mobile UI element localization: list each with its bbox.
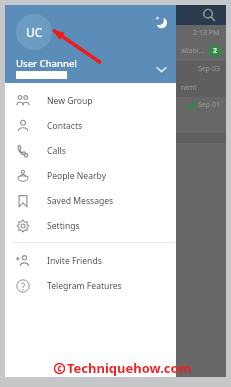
staticText: Telegram Features — [47, 280, 122, 292]
button[interactable]: New Group — [5, 88, 176, 113]
staticText: Invite Friends — [47, 255, 102, 267]
button[interactable]: Sep 01 — [5, 97, 226, 133]
button[interactable]: Telegram Features — [5, 273, 176, 298]
button[interactable]: 2:13 PM — [5, 25, 226, 61]
button[interactable]: People Nearby — [5, 163, 176, 188]
button[interactable]: Invite Friends — [5, 248, 176, 273]
staticText: ailabl... — [181, 46, 205, 56]
button[interactable]: Toggle night mode — [153, 14, 170, 31]
staticText: User Channel — [16, 57, 77, 70]
button[interactable]: Calls — [5, 138, 176, 163]
staticText: Sep 01 — [198, 100, 220, 110]
staticText: 2 — [213, 46, 218, 56]
button[interactable]: Settings — [5, 213, 176, 238]
staticText: Sep 03 — [198, 64, 220, 74]
staticText: UC — [26, 24, 43, 40]
button[interactable]: Profile photo — [16, 14, 52, 50]
staticText: People Nearby — [47, 170, 107, 182]
staticText: Saved Messages — [47, 195, 114, 207]
staticText: New Group — [47, 95, 93, 107]
staticText: Calls — [47, 145, 66, 157]
staticText: 2:13 PM — [193, 28, 220, 38]
button[interactable]: Sep 03 — [5, 61, 226, 97]
button[interactable]: Contacts — [5, 113, 176, 138]
staticText: Settings — [47, 220, 80, 232]
button[interactable]: Saved Messages — [5, 188, 176, 213]
staticText: ram! — [181, 83, 197, 93]
staticText: Contacts — [47, 120, 83, 132]
staticText: Techniquehow.com — [67, 359, 192, 377]
button[interactable]: Expand accounts — [154, 62, 169, 77]
button[interactable]: Search — [201, 7, 217, 23]
